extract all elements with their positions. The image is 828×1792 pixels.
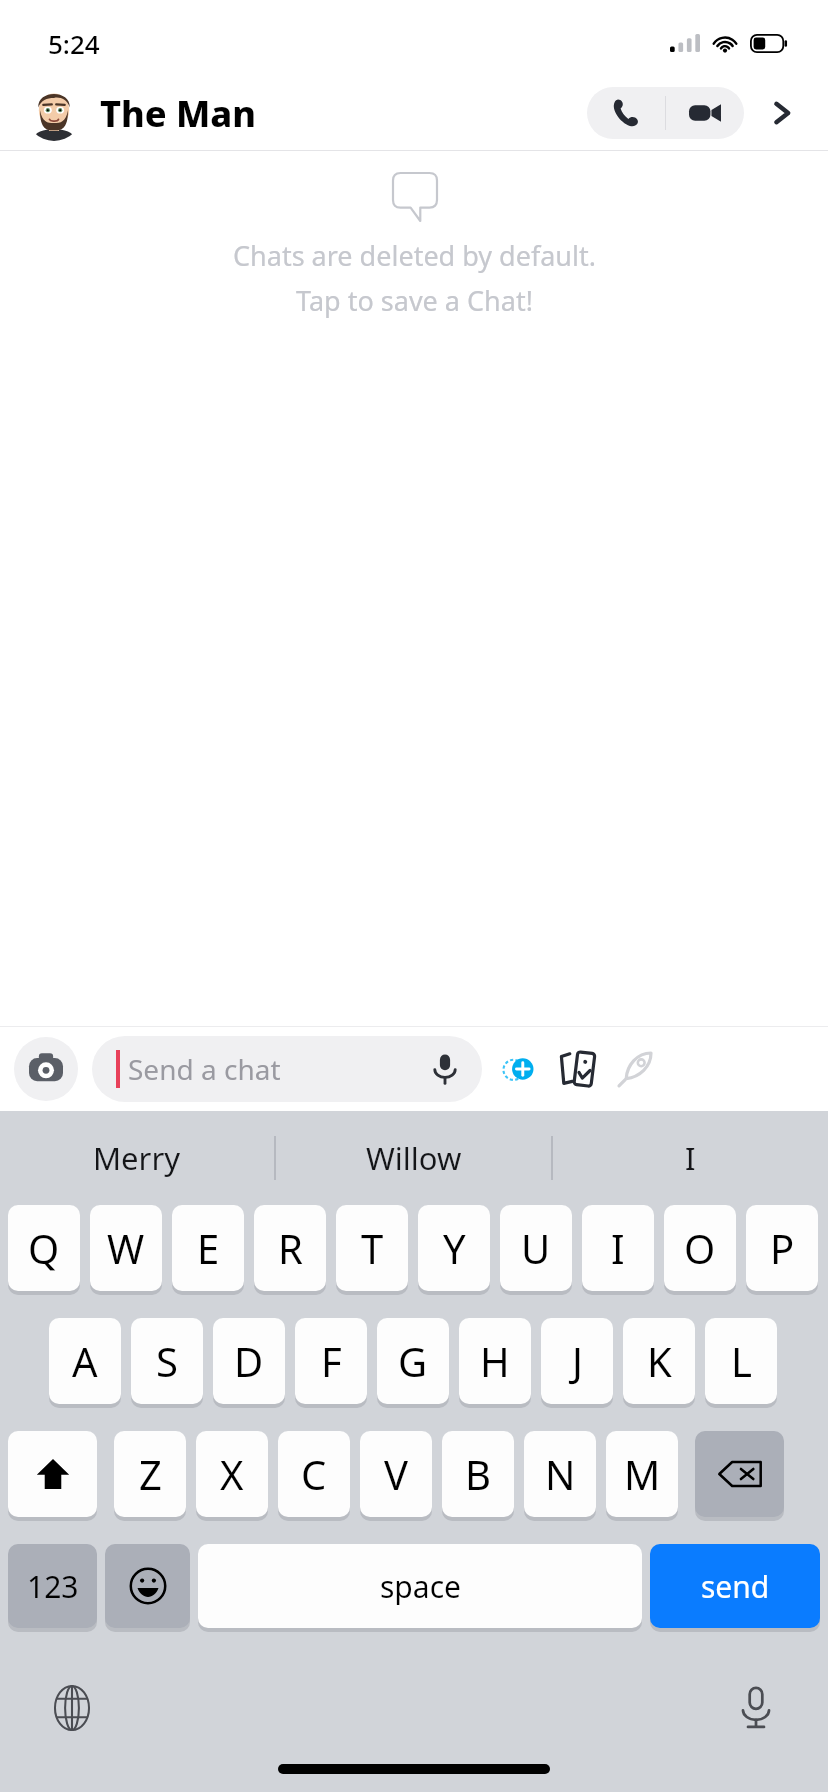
button[interactable]: X — [196, 1431, 268, 1517]
staticText: A — [72, 1334, 98, 1388]
staticText: D — [234, 1334, 264, 1388]
button[interactable] — [105, 1544, 190, 1628]
button[interactable]: S — [131, 1318, 203, 1404]
staticText: Chats are deleted by default. — [233, 237, 596, 274]
staticText: space — [380, 1566, 461, 1607]
staticText: 123 — [27, 1566, 79, 1607]
staticText: send — [701, 1566, 770, 1607]
button[interactable]: I — [582, 1205, 654, 1291]
staticText: W — [107, 1221, 145, 1275]
button[interactable]: Voice call — [587, 87, 665, 139]
staticText: N — [545, 1447, 576, 1501]
button[interactable]: Willow — [276, 1111, 551, 1205]
button[interactable]: G — [377, 1318, 449, 1404]
staticText: The Man — [100, 89, 256, 138]
button[interactable]: V — [360, 1431, 432, 1517]
staticText: I — [685, 1137, 696, 1179]
staticText: Send a chat — [128, 1050, 281, 1088]
button[interactable]: Send a chat — [92, 1036, 482, 1102]
staticText: M — [624, 1447, 661, 1501]
staticText: L — [731, 1334, 752, 1388]
staticText: J — [572, 1334, 583, 1388]
button[interactable]: B — [442, 1431, 514, 1517]
button[interactable]: Camera — [14, 1037, 78, 1101]
staticText: Willow — [366, 1137, 462, 1179]
button[interactable]: Memories — [548, 1040, 606, 1098]
staticText: I — [611, 1221, 625, 1275]
button[interactable] — [8, 1431, 97, 1517]
other: Backspace — [695, 1431, 784, 1521]
button[interactable]: M — [606, 1431, 678, 1517]
button[interactable]: Q — [8, 1205, 80, 1291]
button[interactable] — [695, 1431, 784, 1517]
button[interactable]: Y — [418, 1205, 490, 1291]
button[interactable]: U — [500, 1205, 572, 1291]
button[interactable]: D — [213, 1318, 285, 1404]
button[interactable]: T — [336, 1205, 408, 1291]
button[interactable]: C — [278, 1431, 350, 1517]
staticText: C — [301, 1447, 327, 1501]
button[interactable]: Voice note — [424, 1048, 466, 1090]
staticText: B — [465, 1447, 491, 1501]
button[interactable]: Z — [114, 1431, 186, 1517]
staticText: H — [480, 1334, 510, 1388]
button[interactable]: Dictation — [726, 1678, 786, 1738]
button[interactable]: Games — [606, 1040, 664, 1098]
staticText: G — [398, 1334, 428, 1388]
staticText: O — [684, 1221, 716, 1275]
button[interactable]: L — [705, 1318, 777, 1404]
button[interactable]: More options — [758, 89, 806, 137]
staticText: Y — [443, 1221, 466, 1275]
button[interactable]: E — [172, 1205, 244, 1291]
button[interactable]: 123 — [8, 1544, 97, 1628]
staticText: E — [197, 1221, 220, 1275]
button[interactable]: K — [623, 1318, 695, 1404]
button[interactable]: I — [553, 1111, 828, 1205]
button[interactable]: Stickers — [490, 1040, 548, 1098]
staticText: X — [220, 1447, 244, 1501]
button[interactable]: send — [650, 1544, 820, 1628]
button[interactable]: Video call — [666, 87, 744, 139]
button[interactable]: W — [90, 1205, 162, 1291]
staticText: Z — [139, 1447, 162, 1501]
button[interactable] — [26, 85, 82, 141]
button[interactable]: A — [49, 1318, 121, 1404]
staticText: V — [384, 1447, 408, 1501]
button[interactable]: J — [541, 1318, 613, 1404]
staticText: K — [647, 1334, 672, 1388]
other: Emoji — [105, 1544, 190, 1632]
staticText: Merry — [93, 1137, 181, 1179]
staticText: T — [361, 1221, 384, 1275]
staticText: S — [156, 1334, 178, 1388]
button[interactable]: Merry — [0, 1111, 274, 1205]
button[interactable]: O — [664, 1205, 736, 1291]
button[interactable]: H — [459, 1318, 531, 1404]
staticText: P — [770, 1221, 795, 1275]
staticText: Q — [28, 1221, 60, 1275]
button[interactable]: Change keyboard — [42, 1678, 102, 1738]
button[interactable]: space — [198, 1544, 642, 1628]
button[interactable]: N — [524, 1431, 596, 1517]
staticText: 5:24 — [48, 26, 100, 61]
staticText: F — [321, 1334, 342, 1388]
button[interactable]: P — [746, 1205, 818, 1291]
button[interactable]: F — [295, 1318, 367, 1404]
other: Shift — [8, 1431, 97, 1521]
button[interactable]: R — [254, 1205, 326, 1291]
staticText: U — [521, 1221, 551, 1275]
staticText: Tap to save a Chat! — [296, 282, 533, 319]
staticText: R — [278, 1221, 303, 1275]
